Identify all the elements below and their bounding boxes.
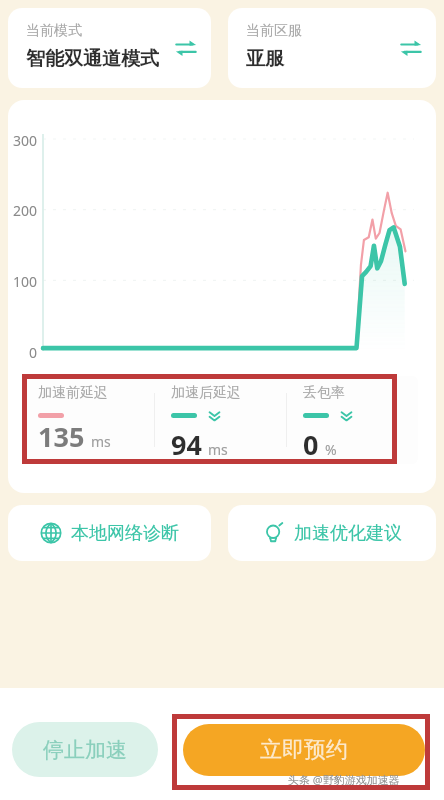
- staticText: 加速前延迟: [38, 384, 108, 402]
- staticText: 当前区服: [246, 22, 302, 40]
- staticText: ms: [208, 440, 228, 459]
- staticText: 停止加速: [43, 737, 127, 763]
- staticText: 亚服: [246, 47, 284, 71]
- staticText: 头条 @野豹游戏加速器: [288, 772, 400, 787]
- button[interactable]: 当前模式: [8, 8, 211, 88]
- button[interactable]: 加速优化建议: [228, 505, 436, 561]
- staticText: 135: [38, 418, 85, 455]
- staticText: 0: [8, 343, 37, 362]
- staticText: 加速后延迟: [171, 384, 241, 402]
- staticText: 智能双通道模式: [26, 47, 159, 71]
- staticText: 0: [303, 426, 319, 463]
- button[interactable]: 停止加速: [12, 722, 158, 777]
- staticText: 丢包率: [303, 384, 345, 402]
- other: Switch: [175, 37, 197, 59]
- staticText: 当前模式: [26, 22, 82, 40]
- button[interactable]: 立即预约: [183, 724, 425, 776]
- button[interactable]: 本地网络诊断: [8, 505, 211, 561]
- staticText: 94: [171, 426, 202, 463]
- staticText: 立即预约: [260, 736, 348, 764]
- staticText: 200: [8, 201, 37, 220]
- staticText: %: [325, 440, 337, 459]
- staticText: 100: [8, 272, 37, 291]
- other: Switch: [400, 37, 422, 59]
- staticText: 本地网络诊断: [71, 522, 179, 545]
- staticText: ms: [91, 432, 111, 451]
- staticText: 加速优化建议: [294, 522, 402, 545]
- staticText: 300: [8, 131, 37, 150]
- button[interactable]: 当前区服: [228, 8, 436, 88]
